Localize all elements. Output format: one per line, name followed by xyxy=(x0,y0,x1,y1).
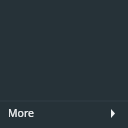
staticText: More xyxy=(8,106,34,120)
other: Show more xyxy=(107,107,119,119)
button[interactable]: More xyxy=(0,100,128,128)
